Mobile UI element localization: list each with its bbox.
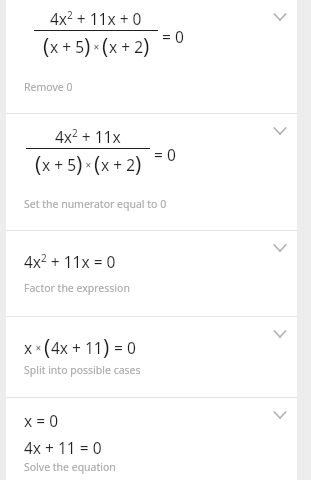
staticText: = 0 [110, 337, 136, 358]
staticText: x = 0 [24, 410, 58, 431]
staticText: 4x2 + 11x + 0 [50, 8, 142, 29]
staticText: Remove 0 [24, 80, 73, 94]
staticText: Split into possible cases [24, 363, 141, 377]
staticText: = 0 [150, 144, 176, 165]
button[interactable]: x [6, 317, 297, 397]
staticText: x [24, 337, 33, 358]
staticText: Solve the equation [24, 460, 116, 474]
staticText: ) [84, 32, 91, 61]
other: Expand step [269, 120, 291, 142]
staticText: × [33, 341, 44, 355]
button[interactable]: 4x2 + 11x [6, 114, 297, 230]
staticText: Set the numerator equal to 0 [24, 197, 167, 211]
staticText: x + 5 [42, 154, 76, 175]
staticText: ( [44, 333, 51, 362]
staticText: ) [103, 333, 110, 362]
staticText: x + 2 [109, 36, 143, 57]
staticText: x + 5 [50, 36, 84, 57]
other: Expand step [269, 404, 291, 426]
staticText: ( [94, 150, 101, 179]
staticText: Factor the expression [24, 281, 130, 295]
staticText: ) [76, 150, 83, 179]
staticText: ( [43, 32, 50, 61]
staticText: = 0 [158, 26, 184, 47]
staticText: 4x + 11 [51, 337, 103, 358]
button[interactable]: 4x2 + 11x = 0 [6, 231, 297, 316]
staticText: 4x + 11 = 0 [24, 437, 102, 458]
staticText: 4x2 + 11x = 0 [24, 251, 116, 272]
staticText: x + 2 [101, 154, 135, 175]
staticText: 4x2 + 11x [55, 126, 121, 147]
staticText: × [83, 158, 94, 172]
staticText: ( [35, 150, 42, 179]
staticText: ( [102, 32, 109, 61]
other: Expand step [269, 6, 291, 28]
other: Expand step [269, 323, 291, 345]
staticText: ) [143, 32, 150, 61]
staticText: ) [135, 150, 142, 179]
button[interactable]: x = 0 [6, 398, 297, 480]
other: Expand step [269, 237, 291, 259]
button[interactable]: 4x2 + 11x + 0 [6, 0, 297, 113]
staticText: × [91, 40, 102, 54]
